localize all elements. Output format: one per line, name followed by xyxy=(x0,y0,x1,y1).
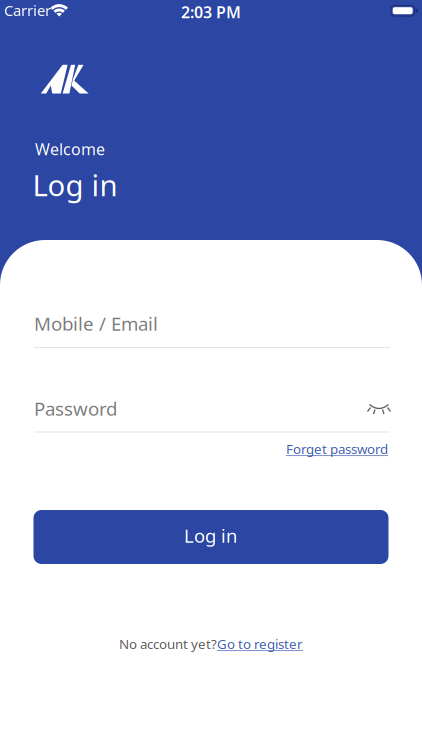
staticText: Welcome xyxy=(35,138,105,160)
staticText: Mobile / Email xyxy=(34,311,158,336)
staticText: Go to register xyxy=(217,635,303,653)
button[interactable]: Mobile / Email xyxy=(34,311,390,348)
button[interactable]: Log in xyxy=(33,510,388,564)
staticText: Log in xyxy=(32,165,117,204)
button[interactable]: Go to register xyxy=(217,635,303,653)
staticText: Forget password xyxy=(286,440,388,458)
staticText: Password xyxy=(34,396,117,421)
staticText: Log in xyxy=(184,523,238,548)
staticText: 2:03 PM xyxy=(181,1,241,23)
button[interactable]: Show password xyxy=(365,398,393,418)
staticText: Carrier xyxy=(4,0,51,20)
staticText: No account yet? xyxy=(119,635,217,653)
button[interactable]: Forget password xyxy=(286,440,388,458)
button[interactable]: Password xyxy=(34,396,390,432)
